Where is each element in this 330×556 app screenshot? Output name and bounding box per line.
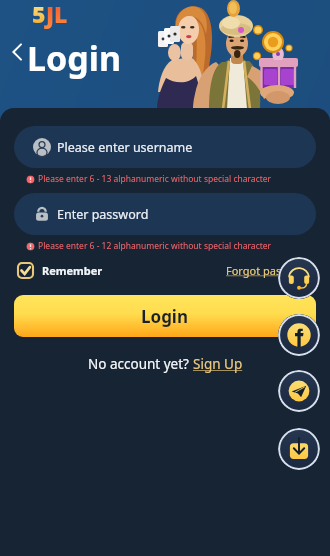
staticText: JL: [46, 0, 68, 29]
button[interactable]: Sign Up: [193, 355, 243, 373]
button[interactable]: Telegram: [278, 370, 320, 412]
staticText: Forgot password: [226, 263, 313, 278]
staticText: Login: [27, 35, 122, 81]
staticText: Login: [141, 305, 189, 328]
staticText: Please enter 6 - 13 alphanumeric without…: [38, 173, 272, 185]
button[interactable]: Facebook: [278, 314, 320, 356]
staticText: 5: [32, 0, 46, 29]
button[interactable]: Enter password: [14, 193, 316, 235]
staticText: Enter password: [57, 206, 149, 223]
button[interactable]: Back: [7, 42, 27, 62]
button[interactable]: Customer support: [278, 257, 320, 299]
staticText: No account yet?: [88, 355, 193, 373]
button[interactable]: Forgot password: [226, 263, 313, 278]
staticText: Sign Up: [193, 355, 243, 373]
staticText: Please enter username: [57, 139, 193, 156]
button[interactable]: Download app: [278, 428, 320, 470]
button[interactable]: Please enter username: [14, 126, 316, 168]
button[interactable]: Login: [14, 295, 316, 337]
staticText: Remember: [42, 263, 103, 278]
button[interactable]: Remember: [17, 262, 103, 279]
staticText: Please enter 6 - 12 alphanumeric without…: [38, 240, 272, 252]
